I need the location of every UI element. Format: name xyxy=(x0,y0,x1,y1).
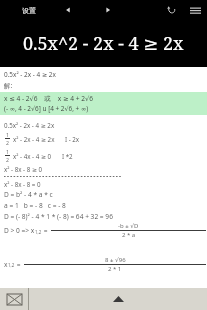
staticText: a = 1 b = - 8 c = - 8 xyxy=(4,201,66,210)
staticText: 2 * 1 xyxy=(108,265,122,273)
button[interactable]: Undo xyxy=(163,2,179,18)
staticText: D = (- 8)² - 4 * 1 * (- 8) = 64 + 32 = 9… xyxy=(4,212,113,221)
button[interactable]: Next xyxy=(100,2,116,18)
staticText: x² - 4x - 4 ≥ 0 xyxy=(13,152,52,160)
staticText: 2 xyxy=(6,139,9,146)
button[interactable]: Scroll up xyxy=(29,288,207,310)
staticText: 0.5x² - 2x - 4 ≥ 2x xyxy=(4,70,56,79)
staticText: 2 xyxy=(6,156,9,163)
staticText: -b ± √D xyxy=(118,222,139,230)
staticText: = xyxy=(15,260,23,269)
staticText: 0.5x² - 2x - 4 ≥ 2x xyxy=(4,121,55,129)
staticText: x² - 2x - 4 ≥ 2x xyxy=(13,135,55,143)
button[interactable]: 设置 xyxy=(20,4,38,17)
button[interactable]: Mail xyxy=(0,288,28,310)
staticText: 8 ± √96 xyxy=(105,256,126,264)
staticText: x² - 8x - 8 = 0 xyxy=(4,180,41,188)
staticText: 2 * a xyxy=(122,231,136,239)
staticText: 1,2 xyxy=(8,262,15,268)
staticText: D = b² - 4 * a * c xyxy=(4,190,53,199)
staticText: D > 0 => x xyxy=(4,226,35,235)
staticText: x ≤ 4 - 2√6 或 x ≥ 4 + 2√6 xyxy=(4,94,93,103)
staticText: x² - 8x - 8 ≥ 0 xyxy=(4,165,43,173)
staticText: (- ∞, 4 - 2√6] u [4 + 2√6, + ∞) xyxy=(4,104,89,113)
staticText: I *2 xyxy=(62,152,73,160)
button[interactable]: Menu xyxy=(187,2,203,18)
staticText: 0.5x^2 - 2x - 4 ≥ 2x xyxy=(23,31,184,56)
staticText: 1 xyxy=(6,131,9,138)
staticText: 1 xyxy=(6,148,9,155)
staticText: = xyxy=(42,226,50,235)
staticText: 设置 xyxy=(22,6,36,15)
staticText: 1,2 xyxy=(35,229,42,235)
button[interactable]: Previous xyxy=(60,2,76,18)
staticText: I - 2x xyxy=(65,135,80,143)
staticText: x xyxy=(4,260,8,269)
staticText: 解: xyxy=(4,81,13,90)
